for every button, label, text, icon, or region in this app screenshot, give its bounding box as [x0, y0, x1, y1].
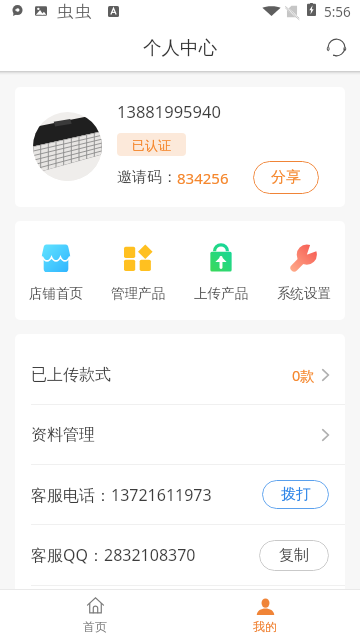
button[interactable]: 资料管理: [15, 405, 345, 464]
staticText: 系统设置: [277, 285, 331, 302]
button[interactable]: 店铺首页: [15, 244, 97, 302]
button[interactable]: [15, 586, 345, 640]
staticText: 客服电话：13721611973: [31, 484, 212, 506]
button[interactable]: 管理产品: [97, 244, 179, 302]
button[interactable]: 系统设置: [262, 244, 345, 302]
button[interactable]: 我的: [225, 590, 305, 640]
staticText: 0款: [292, 365, 315, 385]
button[interactable]: 客服电话：13721611973: [15, 465, 345, 524]
button[interactable]: 客服: [320, 32, 352, 64]
staticText: 5:56: [324, 3, 351, 21]
staticText: 分享: [271, 168, 301, 187]
button[interactable]: 已上传款式: [15, 345, 345, 404]
staticText: 虫: [57, 2, 73, 22]
button[interactable]: 复制: [259, 540, 329, 571]
staticText: 客服QQ：2832108370: [31, 544, 196, 566]
staticText: 资料管理: [31, 425, 95, 445]
staticText: 拨打: [281, 485, 311, 504]
staticText: 我的: [253, 619, 277, 634]
staticText: 复制: [279, 546, 309, 565]
staticText: 店铺首页: [29, 285, 83, 302]
staticText: 上传产品: [194, 285, 248, 302]
staticText: 管理产品: [111, 285, 165, 302]
staticText: 首页: [83, 619, 107, 634]
staticText: 虫: [75, 2, 91, 22]
button[interactable]: 客服QQ：2832108370: [15, 525, 345, 585]
staticText: 已上传款式: [31, 365, 111, 385]
staticText: 834256: [177, 168, 229, 188]
button[interactable]: 拨打: [262, 480, 329, 509]
staticText: 邀请码：: [117, 168, 177, 187]
button[interactable]: 首页: [55, 590, 135, 640]
button[interactable]: 分享: [253, 161, 319, 194]
staticText: 个人中心: [143, 36, 217, 59]
staticText: 已认证: [132, 137, 171, 153]
staticText: 13881995940: [117, 100, 221, 122]
button[interactable]: 上传产品: [179, 244, 262, 302]
